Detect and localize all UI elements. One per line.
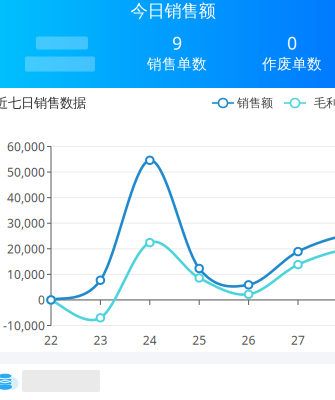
staticText: 近七日销售数据 (0, 95, 86, 111)
staticText: 今日销售额 (130, 0, 215, 22)
staticText: 22 (44, 332, 58, 348)
staticText: 作废单数 (262, 55, 322, 73)
staticText: 25 (192, 332, 206, 348)
staticText: 26 (242, 332, 256, 348)
staticText: 60,000 (7, 138, 45, 154)
staticText: 0 (287, 31, 297, 54)
staticText: -10,000 (3, 317, 45, 333)
staticText: 销售额 (237, 96, 273, 110)
staticText: 27 (291, 332, 305, 348)
staticText: 9 (172, 31, 182, 54)
staticText: 24 (143, 332, 157, 348)
staticText: 0 (38, 292, 45, 308)
staticText: 40,000 (7, 190, 45, 206)
staticText: 23 (93, 332, 107, 348)
staticText: 20,000 (7, 241, 45, 257)
staticText: 毛利 (314, 96, 335, 110)
staticText: 10,000 (7, 266, 45, 282)
staticText: 50,000 (7, 164, 45, 180)
staticText: 30,000 (7, 215, 45, 231)
staticText: 销售单数 (147, 55, 207, 73)
